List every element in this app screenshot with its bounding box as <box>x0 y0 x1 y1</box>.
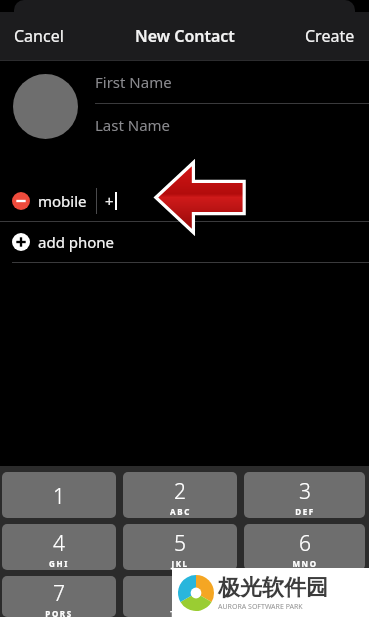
button[interactable]: Remove phone <box>0 181 369 221</box>
staticText: 4 <box>53 529 65 558</box>
button[interactable]: Add photo <box>13 74 78 139</box>
staticText: + <box>105 191 114 211</box>
staticText: 1 <box>53 482 65 511</box>
button[interactable]: 2 <box>123 472 237 518</box>
staticText: 2 <box>174 477 186 506</box>
button[interactable]: 3 <box>244 472 365 518</box>
staticText: 3 <box>299 477 311 506</box>
staticText: Create <box>305 25 355 47</box>
staticText: MNO <box>292 558 318 569</box>
staticText: 6 <box>299 529 311 558</box>
staticText: 7 <box>53 579 65 608</box>
button[interactable]: 4 <box>2 524 116 570</box>
button[interactable]: 6 <box>244 524 365 570</box>
staticText: WXYZ <box>290 608 320 617</box>
button[interactable]: 5 <box>123 524 237 570</box>
staticText: Last Name <box>95 115 171 135</box>
other: Remove phone <box>12 192 30 210</box>
button[interactable]: add phone <box>0 222 369 262</box>
staticText: add phone <box>38 232 115 252</box>
staticText: 极光软件园 <box>218 574 328 602</box>
staticText: PQRS <box>45 608 73 617</box>
staticText: Cancel <box>14 25 64 47</box>
staticText: mobile <box>38 191 87 211</box>
staticText: TUV <box>170 608 191 617</box>
staticText: JKL <box>171 558 189 569</box>
staticText: First Name <box>95 72 172 92</box>
button[interactable]: 8 <box>123 576 237 617</box>
button[interactable]: 7 <box>2 576 116 617</box>
staticText: DEF <box>295 506 315 517</box>
button[interactable]: 1 <box>2 472 116 518</box>
button[interactable]: First Name <box>95 61 369 103</box>
staticText: 9 <box>299 579 311 608</box>
staticText: 5 <box>174 529 186 558</box>
button[interactable]: 9 <box>244 576 365 617</box>
button[interactable]: Create <box>291 17 369 55</box>
button[interactable]: Last Name <box>95 104 369 146</box>
staticText: ABC <box>170 506 191 517</box>
staticText: New Contact <box>135 25 235 47</box>
staticText: 8 <box>174 579 186 608</box>
staticText: AURORA SOFTWARE PARK <box>218 602 303 612</box>
button[interactable]: Cancel <box>0 17 78 55</box>
staticText: GHI <box>49 558 69 569</box>
